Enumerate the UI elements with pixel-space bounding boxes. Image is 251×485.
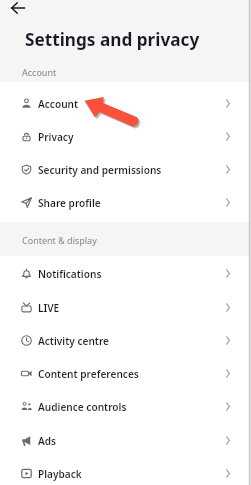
button[interactable]: Ads: [0, 424, 251, 457]
staticText: Privacy: [38, 130, 74, 144]
staticText: Account: [38, 97, 79, 111]
staticText: LIVE: [38, 301, 60, 315]
staticText: Security and permissions: [38, 163, 162, 177]
button[interactable]: Account: [0, 87, 251, 120]
staticText: Account: [22, 66, 57, 78]
staticText: Content & display: [22, 234, 97, 246]
staticText: Content preferences: [38, 367, 139, 381]
button[interactable]: Share profile: [0, 186, 251, 219]
staticText: Ads: [38, 434, 57, 448]
staticText: Settings and privacy: [25, 28, 200, 51]
button[interactable]: Activity centre: [0, 324, 251, 357]
staticText: Playback: [38, 467, 82, 481]
button[interactable]: Back: [10, 0, 26, 16]
staticText: Activity centre: [38, 334, 110, 348]
button[interactable]: Playback: [0, 457, 251, 485]
button[interactable]: Content preferences: [0, 357, 251, 390]
staticText: Notifications: [38, 267, 102, 281]
button[interactable]: LIVE: [0, 291, 251, 324]
button[interactable]: Notifications: [0, 257, 251, 290]
staticText: Audience controls: [38, 400, 127, 414]
button[interactable]: Audience controls: [0, 390, 251, 423]
staticText: Share profile: [38, 196, 101, 210]
button[interactable]: Privacy: [0, 120, 251, 153]
button[interactable]: Security and permissions: [0, 153, 251, 186]
